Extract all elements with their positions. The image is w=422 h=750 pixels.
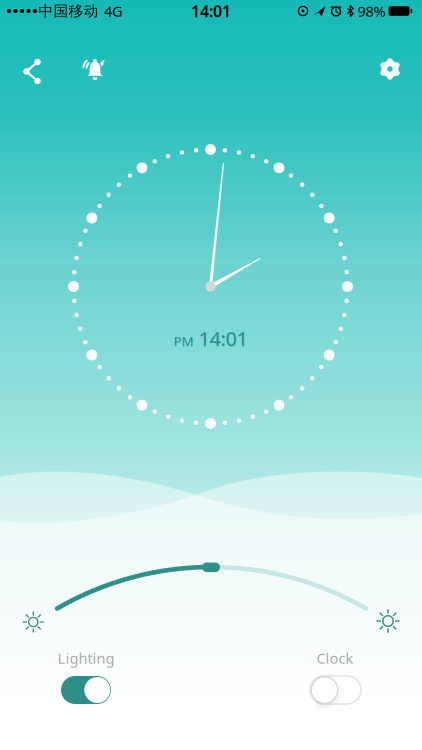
staticText: 14:01 [198,325,247,352]
staticText: 中国移动 [38,2,98,20]
staticText: 98% [357,1,385,21]
button[interactable]: Lighting [61,676,111,704]
button[interactable]: Settings [368,47,412,91]
staticText: PM [173,332,193,350]
staticText: 4G [104,1,123,21]
button[interactable]: Share [11,49,55,93]
button[interactable]: Brightness slider [202,562,220,572]
button[interactable]: Clock [310,676,361,704]
button[interactable]: Alarms [71,47,119,95]
staticText: Lighting [57,648,114,668]
staticText: Clock [316,648,353,668]
staticText: 14:01 [191,0,231,22]
